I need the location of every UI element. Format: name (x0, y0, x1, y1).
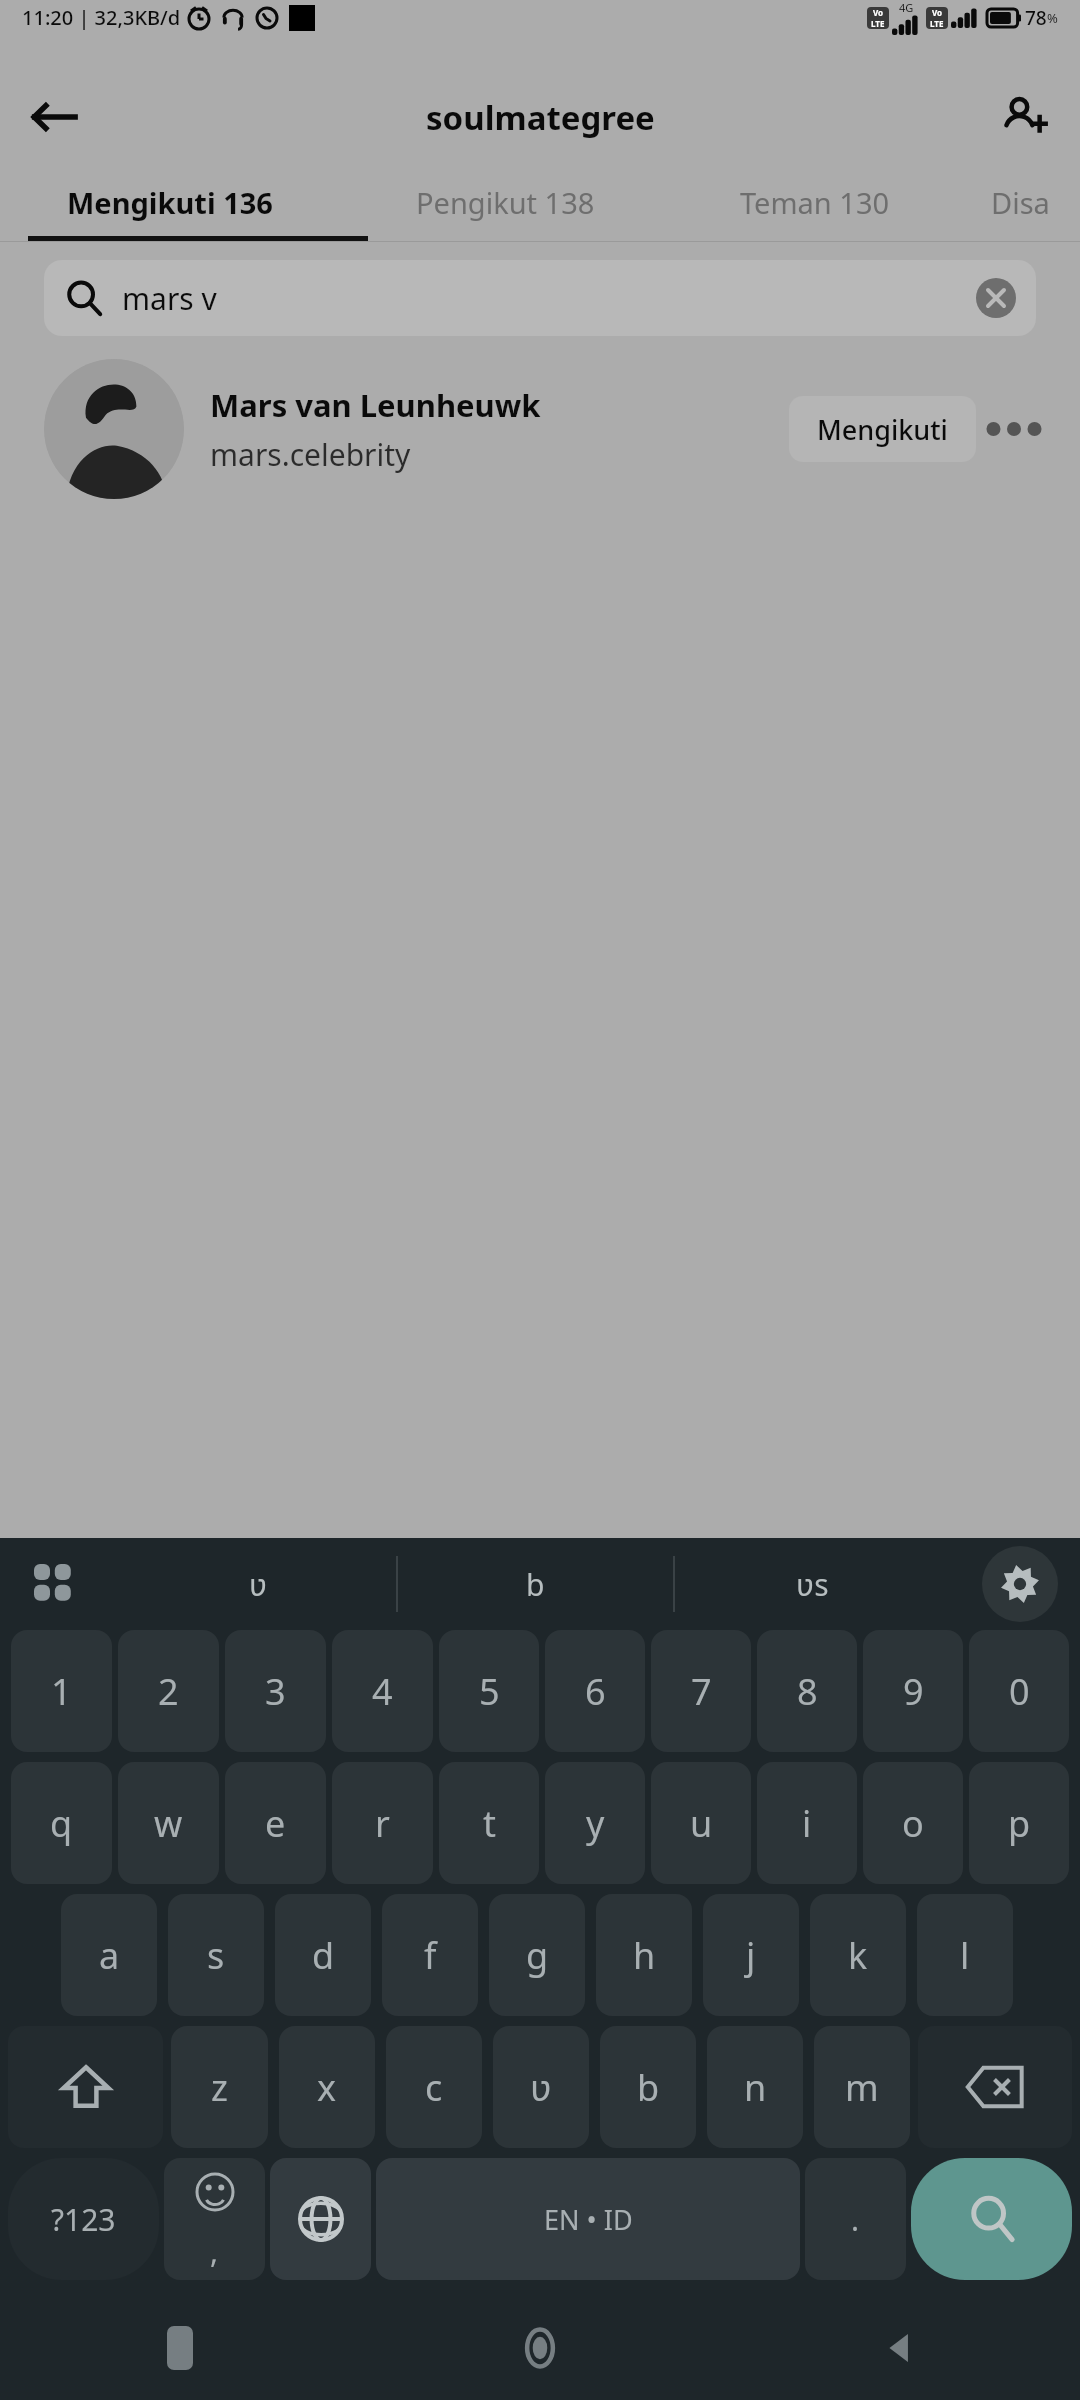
staticText: Mengikuti (817, 411, 948, 448)
button[interactable]: x (279, 2026, 375, 2148)
button[interactable]: Backspace (918, 2026, 1072, 2148)
staticText: c (425, 2063, 443, 2112)
staticText: Vo (873, 7, 884, 18)
button[interactable]: c (386, 2026, 482, 2148)
button[interactable]: 3 (225, 1630, 326, 1752)
button[interactable]: Back (720, 2296, 1080, 2400)
staticText: b (526, 1564, 545, 1605)
button[interactable]: ʋs (675, 1538, 950, 1630)
button[interactable]: Shift (8, 2026, 163, 2148)
button[interactable]: s (168, 1894, 264, 2016)
staticText: r (375, 1799, 390, 1848)
button[interactable]: 1 (11, 1630, 112, 1752)
button[interactable]: Add person (992, 85, 1056, 149)
staticText: a (99, 1931, 120, 1980)
staticText: mars v (122, 278, 217, 319)
button[interactable]: Keyboard settings (982, 1546, 1058, 1622)
button[interactable]: z (171, 2026, 268, 2148)
button[interactable]: r (332, 1762, 433, 1884)
staticText: EN • ID (544, 2201, 633, 2238)
button[interactable]: ʋ (120, 1538, 396, 1630)
staticText: y (586, 1799, 605, 1848)
button[interactable]: Clear (974, 276, 1018, 320)
button[interactable]: Teman 130 (670, 162, 960, 242)
button[interactable]: i (757, 1762, 857, 1884)
button[interactable]: l (917, 1894, 1013, 2016)
staticText: 4G (899, 0, 914, 15)
button[interactable]: w (118, 1762, 219, 1884)
staticText: 2 (158, 1667, 179, 1716)
button[interactable]: Mengikuti 136 (0, 162, 340, 242)
button[interactable]: m (814, 2026, 910, 2148)
staticText: Vo (932, 7, 943, 18)
staticText: Pengikut 138 (416, 183, 595, 222)
button[interactable]: Home (360, 2296, 720, 2400)
button[interactable]: Change language (270, 2158, 371, 2280)
button[interactable]: p (969, 1762, 1069, 1884)
staticText: i (802, 1799, 812, 1848)
staticText: 7 (691, 1667, 712, 1716)
button[interactable]: u (651, 1762, 751, 1884)
button[interactable]: b (600, 2026, 696, 2148)
button[interactable]: k (810, 1894, 906, 2016)
staticText: Mars van Leunheuwk (210, 384, 541, 426)
staticText: m (845, 2063, 879, 2112)
staticText: n (744, 2063, 767, 2112)
button[interactable]: 9 (863, 1630, 963, 1752)
button[interactable]: a (61, 1894, 157, 2016)
button[interactable]: Back (22, 85, 86, 149)
button[interactable]: mars v (44, 260, 1036, 336)
button[interactable]: Mengikuti (789, 396, 976, 462)
button[interactable]: Pengikut 138 (340, 162, 670, 242)
button[interactable]: 4 (332, 1630, 433, 1752)
staticText: LTE (930, 18, 944, 29)
button[interactable]: o (863, 1762, 963, 1884)
button[interactable]: 7 (651, 1630, 751, 1752)
staticText: 9 (903, 1667, 924, 1716)
button[interactable]: 2 (118, 1630, 219, 1752)
staticText: g (526, 1931, 549, 1980)
button[interactable]: b (398, 1538, 673, 1630)
button[interactable]: More options (976, 396, 1052, 462)
button[interactable]: . (805, 2158, 906, 2280)
button[interactable]: Search (911, 2158, 1072, 2280)
button[interactable]: f (382, 1894, 478, 2016)
button[interactable]: Disa (960, 162, 1080, 242)
staticText: w (154, 1799, 183, 1848)
staticText: d (312, 1931, 335, 1980)
staticText: mars.celebrity (210, 434, 411, 475)
button[interactable]: q (11, 1762, 112, 1884)
button[interactable]: Mars van Leunheuwk (0, 354, 1080, 504)
button[interactable]: y (545, 1762, 645, 1884)
staticText: x (317, 2063, 337, 2112)
button[interactable]: n (707, 2026, 803, 2148)
button[interactable]: t (439, 1762, 539, 1884)
button[interactable]: 6 (545, 1630, 645, 1752)
button[interactable]: j (703, 1894, 799, 2016)
button[interactable]: e (225, 1762, 326, 1884)
staticText: ?123 (51, 2199, 116, 2240)
button[interactable]: d (275, 1894, 371, 2016)
button[interactable]: ?123 (8, 2158, 159, 2280)
button[interactable]: h (596, 1894, 692, 2016)
button[interactable]: ʋ (493, 2026, 589, 2148)
button[interactable]: Clipboard (22, 1552, 86, 1616)
staticText: soulmategree (426, 95, 655, 140)
staticText: 6 (585, 1667, 606, 1716)
staticText: h (633, 1931, 656, 1980)
staticText: , (210, 2231, 219, 2272)
button[interactable]: 0 (969, 1630, 1069, 1752)
staticText: ʋ (249, 1564, 268, 1605)
button[interactable]: Emoji (164, 2158, 265, 2280)
staticText: s (207, 1931, 225, 1980)
staticText: 1 (51, 1667, 72, 1716)
button[interactable]: EN • ID (376, 2158, 800, 2280)
staticText: 4 (372, 1667, 393, 1716)
staticText: . (851, 2199, 860, 2240)
staticText: p (1008, 1799, 1031, 1848)
button[interactable]: 8 (757, 1630, 857, 1752)
button[interactable]: g (489, 1894, 585, 2016)
button[interactable]: Recent apps (0, 2296, 360, 2400)
staticText: ʋs (796, 1564, 829, 1605)
button[interactable]: 5 (439, 1630, 539, 1752)
